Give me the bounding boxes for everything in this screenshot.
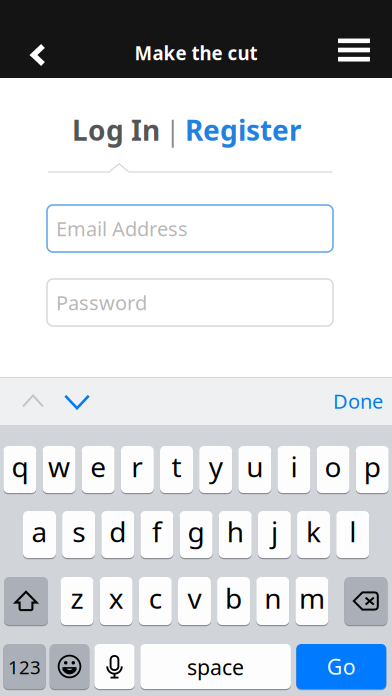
button[interactable]: g <box>180 511 213 558</box>
button[interactable]: c <box>139 577 172 625</box>
staticText: a <box>31 513 47 550</box>
button[interactable]: Register <box>185 111 302 149</box>
button[interactable]: Next field <box>55 377 99 425</box>
button[interactable]: Password <box>47 279 333 326</box>
staticText: p <box>364 448 381 485</box>
button[interactable]: l <box>336 511 369 558</box>
button[interactable]: b <box>217 577 250 625</box>
staticText: v <box>187 579 201 617</box>
button[interactable]: s <box>62 511 95 558</box>
staticText: w <box>48 448 70 485</box>
staticText: c <box>149 579 162 617</box>
button[interactable]: h <box>219 511 252 558</box>
staticText: | <box>165 111 180 149</box>
staticText: d <box>109 513 126 550</box>
staticText: f <box>152 513 162 550</box>
button[interactable]: a <box>23 511 56 558</box>
button[interactable]: o <box>317 446 350 493</box>
staticText: n <box>264 579 281 617</box>
button[interactable]: d <box>101 511 134 558</box>
staticText: y <box>209 448 223 485</box>
button[interactable]: Emoji <box>50 644 89 689</box>
staticText: g <box>188 513 205 550</box>
button[interactable]: Log In <box>72 111 160 149</box>
button[interactable]: Email Address <box>47 205 333 252</box>
button[interactable]: Shift <box>4 577 48 625</box>
button[interactable]: y <box>199 446 232 493</box>
button[interactable]: Dictate <box>94 644 135 689</box>
button[interactable]: x <box>100 577 133 625</box>
button[interactable]: Back <box>0 22 62 78</box>
staticText: m <box>299 579 325 617</box>
button[interactable]: Delete <box>344 577 387 625</box>
button[interactable]: m <box>295 577 328 625</box>
button[interactable]: i <box>277 446 310 493</box>
staticText: Done <box>333 388 383 414</box>
button[interactable]: Go <box>296 644 386 689</box>
staticText: Register <box>185 111 302 149</box>
staticText: h <box>227 513 244 550</box>
button[interactable]: n <box>256 577 289 625</box>
button[interactable]: w <box>42 446 75 493</box>
button[interactable]: e <box>82 446 115 493</box>
button[interactable]: t <box>160 446 193 493</box>
staticText: Email Address <box>56 215 188 242</box>
button[interactable]: Done <box>333 377 392 425</box>
button[interactable]: Menu <box>320 22 392 78</box>
staticText: j <box>271 513 278 550</box>
button[interactable]: q <box>3 446 36 493</box>
button[interactable]: z <box>60 577 93 625</box>
staticText: q <box>11 448 28 485</box>
button[interactable]: space <box>140 644 291 689</box>
staticText: Log In <box>72 111 160 149</box>
button[interactable]: Previous field <box>0 377 55 425</box>
staticText: x <box>109 579 124 617</box>
staticText: k <box>306 513 321 550</box>
staticText: r <box>131 448 143 485</box>
staticText: Go <box>327 652 356 681</box>
staticText: o <box>325 448 342 485</box>
staticText: e <box>90 448 106 485</box>
button[interactable]: u <box>238 446 271 493</box>
staticText: l <box>349 513 356 550</box>
staticText: t <box>171 448 181 485</box>
button[interactable]: k <box>297 511 330 558</box>
button[interactable]: r <box>121 446 154 493</box>
staticText: s <box>72 513 85 550</box>
staticText: Make the cut <box>134 41 257 65</box>
staticText: Password <box>56 289 147 316</box>
button[interactable]: f <box>140 511 173 558</box>
staticText: b <box>225 579 242 617</box>
button[interactable]: p <box>356 446 389 493</box>
staticText: space <box>187 653 244 681</box>
button[interactable]: 123 <box>3 644 46 689</box>
staticText: 123 <box>8 655 41 679</box>
button[interactable]: j <box>258 511 291 558</box>
staticText: i <box>290 448 297 485</box>
staticText: z <box>70 579 83 617</box>
button[interactable]: v <box>178 577 211 625</box>
staticText: u <box>246 448 263 485</box>
